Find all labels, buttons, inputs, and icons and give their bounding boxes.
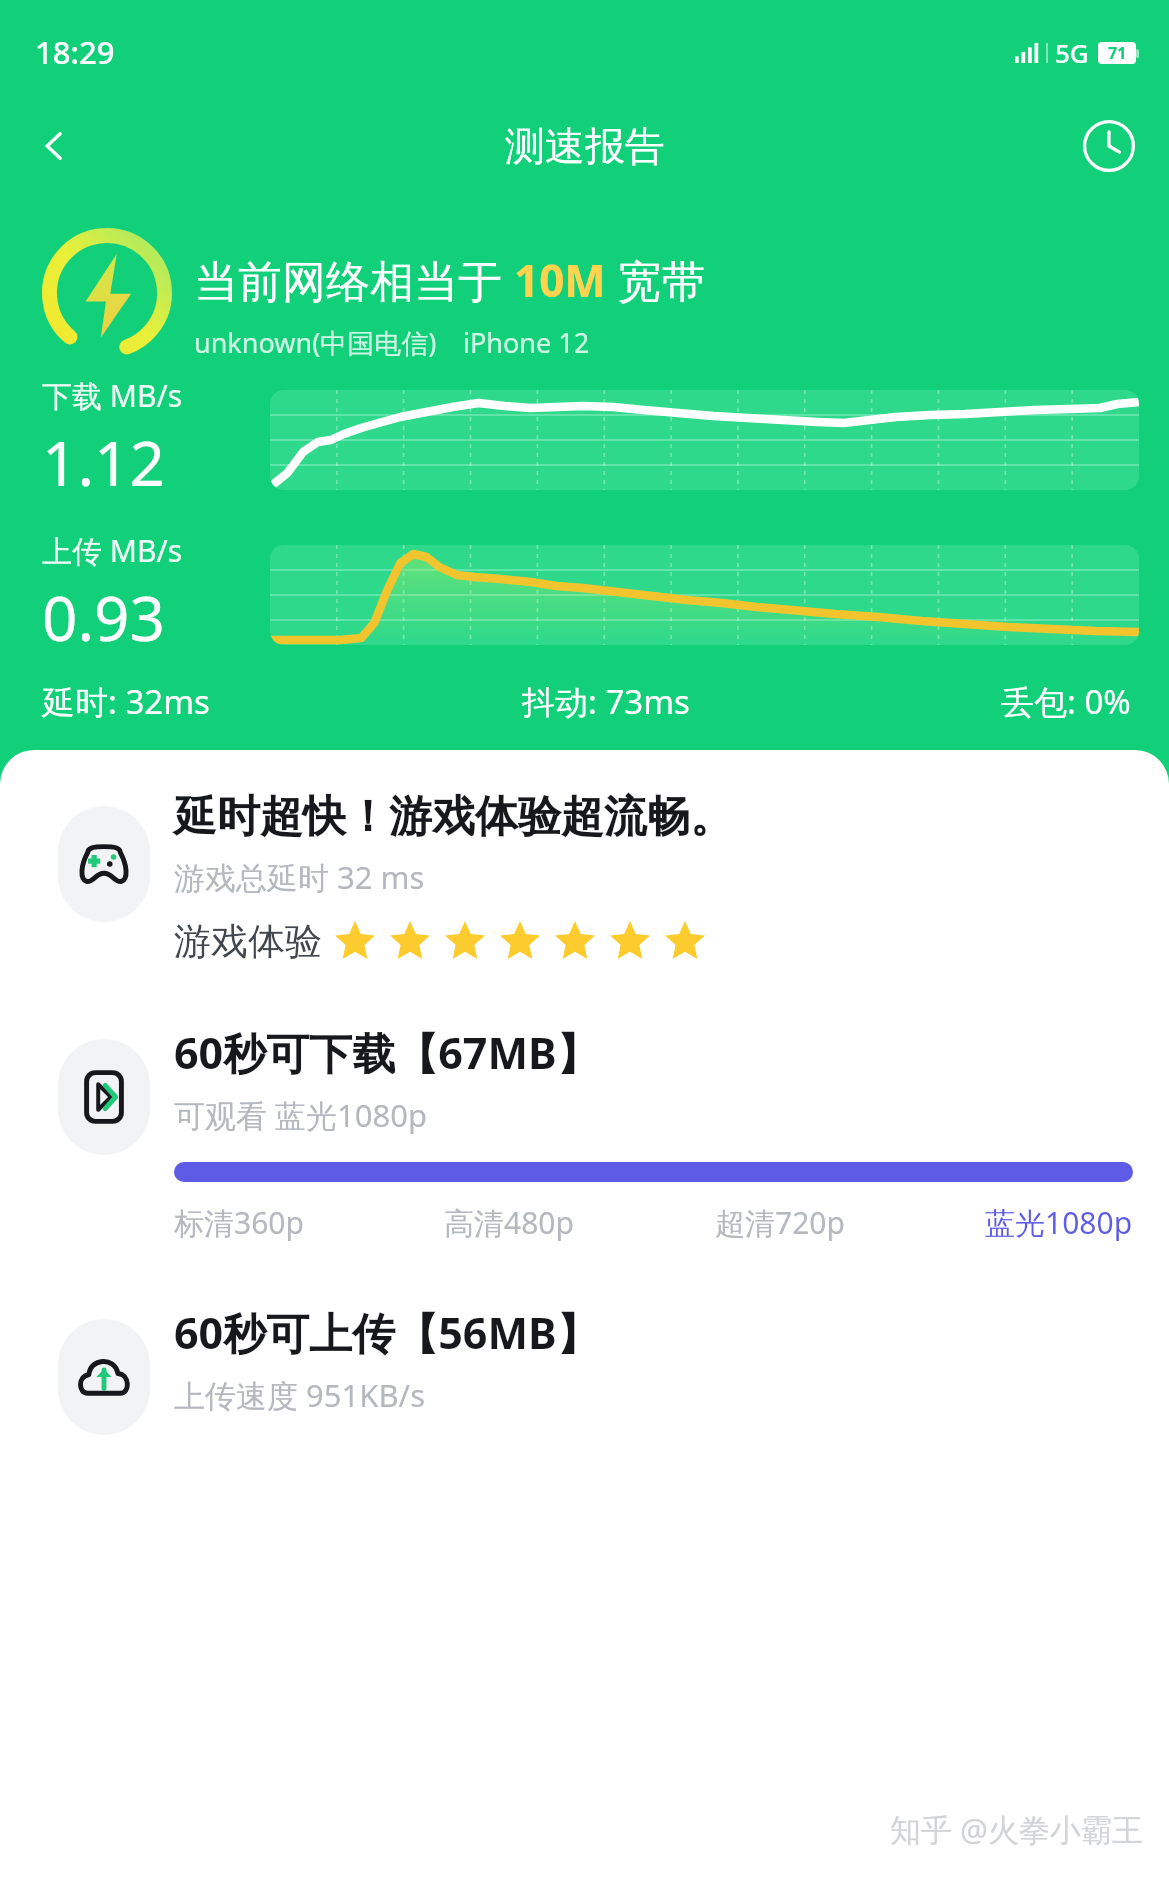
staticText: 游戏总延时 32 ms xyxy=(174,856,425,898)
staticText: 60秒可下载【67MB】 xyxy=(174,1023,600,1082)
staticText: 71 xyxy=(1108,42,1127,64)
staticText: 标清360p xyxy=(174,1202,304,1243)
staticText: 延时: 32ms xyxy=(42,679,210,724)
button[interactable]: 延时超快！游戏体验超流畅。 xyxy=(0,806,1169,981)
staticText: 宽带 xyxy=(606,250,706,310)
staticText: 上传速度 951KB/s xyxy=(174,1374,425,1416)
staticText: 1.12 xyxy=(42,420,166,504)
button[interactable]: 60秒可上传【56MB】 xyxy=(0,1319,1169,1435)
staticText: 10M xyxy=(514,250,606,310)
staticText: unknown(中国电信) xyxy=(194,324,437,361)
staticText: 超清720p xyxy=(715,1202,845,1243)
staticText: 丢包: 0% xyxy=(1001,679,1131,724)
button[interactable]: Back xyxy=(22,114,86,178)
staticText: 18:29 xyxy=(35,31,115,73)
staticText: 知乎 @火拳小霸王 xyxy=(890,1808,1143,1850)
staticText: 下载 MB/s xyxy=(42,375,183,416)
staticText: 测速报告 xyxy=(505,121,665,171)
staticText: 5G xyxy=(1055,35,1089,70)
staticText: 抖动: 73ms xyxy=(522,679,690,724)
staticText: 60秒可上传【56MB】 xyxy=(174,1303,600,1362)
staticText: 上传 MB/s xyxy=(42,530,183,571)
staticText: iPhone 12 xyxy=(463,324,590,361)
button[interactable]: History xyxy=(1075,112,1143,180)
staticText: 蓝光1080p xyxy=(985,1202,1133,1243)
staticText: 延时超快！游戏体验超流畅。 xyxy=(174,790,733,844)
staticText: 当前网络相当于 xyxy=(194,250,514,310)
staticText: 高清480p xyxy=(444,1202,574,1243)
staticText: 0.93 xyxy=(42,575,166,659)
staticText: 游戏体验 xyxy=(174,918,322,965)
button[interactable]: 60秒可下载【67MB】 xyxy=(0,1039,1169,1259)
staticText: 可观看 蓝光1080p xyxy=(174,1094,428,1136)
